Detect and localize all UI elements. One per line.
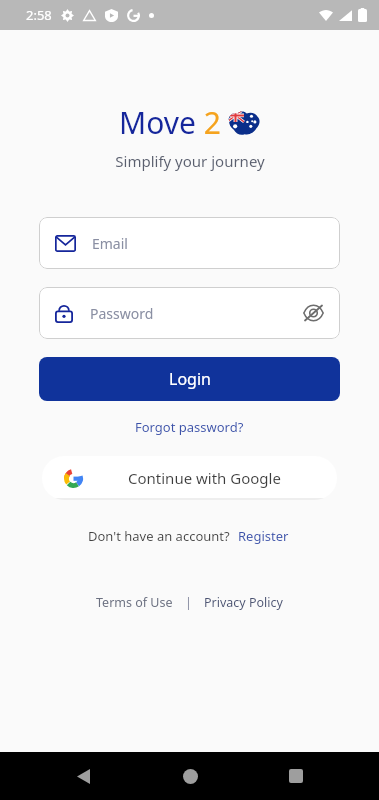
staticText: 2:58 (26, 6, 52, 24)
staticText: Continue with Google (128, 468, 281, 488)
staticText: Register (238, 527, 289, 545)
staticText: Terms of Use (96, 594, 173, 611)
staticText: Password (90, 304, 298, 323)
staticText: Email (92, 234, 128, 253)
button[interactable]: Recent apps (273, 753, 319, 799)
button[interactable]: Back (60, 753, 106, 799)
staticText: Simplify your journey (115, 151, 265, 171)
button[interactable]: Continue with Google (42, 456, 337, 500)
staticText: Login (169, 368, 211, 390)
staticText: Move 2 (119, 102, 221, 143)
button[interactable]: Show password (298, 298, 328, 328)
button[interactable]: Forgot password? (129, 415, 250, 439)
staticText: Forgot password? (135, 418, 244, 436)
button[interactable]: Email (39, 217, 340, 269)
staticText: Don't have an account? (88, 527, 230, 545)
button[interactable]: Password (39, 287, 340, 339)
staticText: | (185, 594, 192, 611)
button[interactable]: Login (39, 357, 340, 401)
staticText: Privacy Policy (204, 594, 283, 611)
button[interactable]: Register (236, 524, 291, 548)
button[interactable]: Terms of Use (92, 591, 177, 614)
button[interactable]: Home (167, 753, 213, 799)
button[interactable]: Privacy Policy (200, 591, 287, 614)
